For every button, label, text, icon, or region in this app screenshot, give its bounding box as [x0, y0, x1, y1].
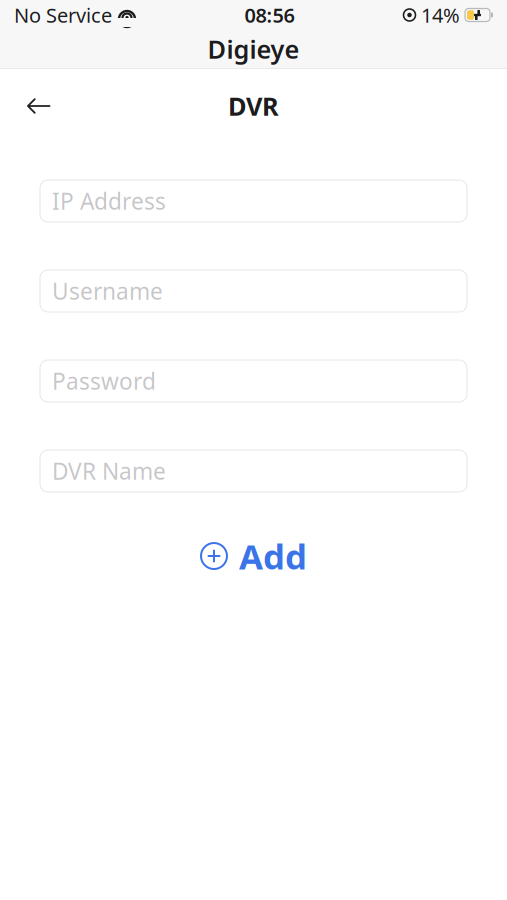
button[interactable]: Back	[16, 83, 62, 129]
staticText: Password	[52, 366, 156, 396]
staticText: Digieye	[207, 32, 299, 66]
staticText: 14%	[421, 2, 460, 28]
staticText: IP Address	[52, 186, 166, 216]
staticText: DVR	[228, 89, 279, 123]
staticText: 08:56	[244, 2, 294, 28]
staticText: Username	[52, 276, 163, 306]
button[interactable]: Add	[182, 525, 325, 587]
staticText: DVR Name	[52, 456, 166, 486]
staticText: No Service	[14, 2, 112, 28]
staticText: Add	[239, 533, 307, 579]
